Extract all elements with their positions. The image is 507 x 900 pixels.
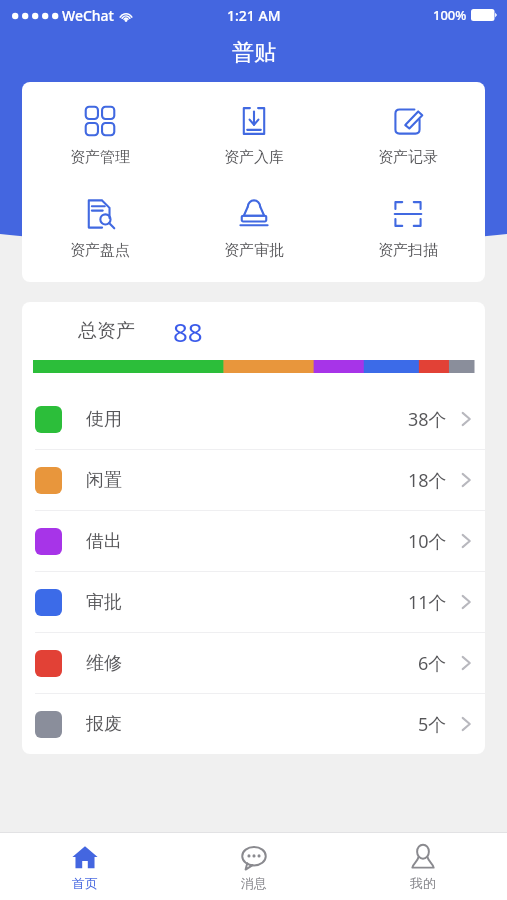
button[interactable]: 使用 <box>22 389 485 449</box>
staticText: 普贴 <box>232 39 276 67</box>
button[interactable]: 资产盘点 <box>22 193 177 264</box>
staticText: 资产入库 <box>224 148 284 167</box>
staticText: 总资产 <box>78 319 135 343</box>
button[interactable]: 资产审批 <box>177 193 331 264</box>
staticText: 资产扫描 <box>378 241 438 260</box>
button[interactable]: 维修 <box>22 633 485 693</box>
button[interactable]: 首页 <box>0 833 169 900</box>
button[interactable]: 资产管理 <box>22 100 177 171</box>
staticText: 资产盘点 <box>70 241 130 260</box>
staticText: 资产审批 <box>224 241 284 260</box>
staticText: 6个 <box>418 651 447 676</box>
staticText: 报废 <box>86 713 122 736</box>
staticText: 88 <box>173 314 203 349</box>
staticText: 维修 <box>86 652 122 675</box>
staticText: WeChat <box>62 6 114 25</box>
button[interactable]: 审批 <box>22 572 485 632</box>
staticText: 5个 <box>418 712 447 737</box>
staticText: 资产记录 <box>378 148 438 167</box>
staticText: 借出 <box>86 530 122 553</box>
staticText: 100% <box>433 6 467 24</box>
staticText: 1:21 AM <box>227 6 281 25</box>
staticText: 审批 <box>86 591 122 614</box>
button[interactable]: 资产扫描 <box>331 193 485 264</box>
staticText: 11个 <box>408 590 447 615</box>
staticText: 我的 <box>410 875 436 891</box>
staticText: 18个 <box>408 468 447 493</box>
staticText: 10个 <box>408 529 447 554</box>
button[interactable]: 我的 <box>338 833 507 900</box>
staticText: 消息 <box>241 875 267 891</box>
staticText: 38个 <box>408 407 447 432</box>
staticText: 使用 <box>86 408 122 431</box>
button[interactable]: 消息 <box>169 833 338 900</box>
staticText: 闲置 <box>86 469 122 492</box>
button[interactable]: 闲置 <box>22 450 485 510</box>
button[interactable]: 借出 <box>22 511 485 571</box>
staticText: 首页 <box>72 875 98 891</box>
button[interactable]: 资产入库 <box>177 100 331 171</box>
button[interactable]: 资产记录 <box>331 100 485 171</box>
staticText: 资产管理 <box>70 148 130 167</box>
button[interactable]: 报废 <box>22 694 485 754</box>
